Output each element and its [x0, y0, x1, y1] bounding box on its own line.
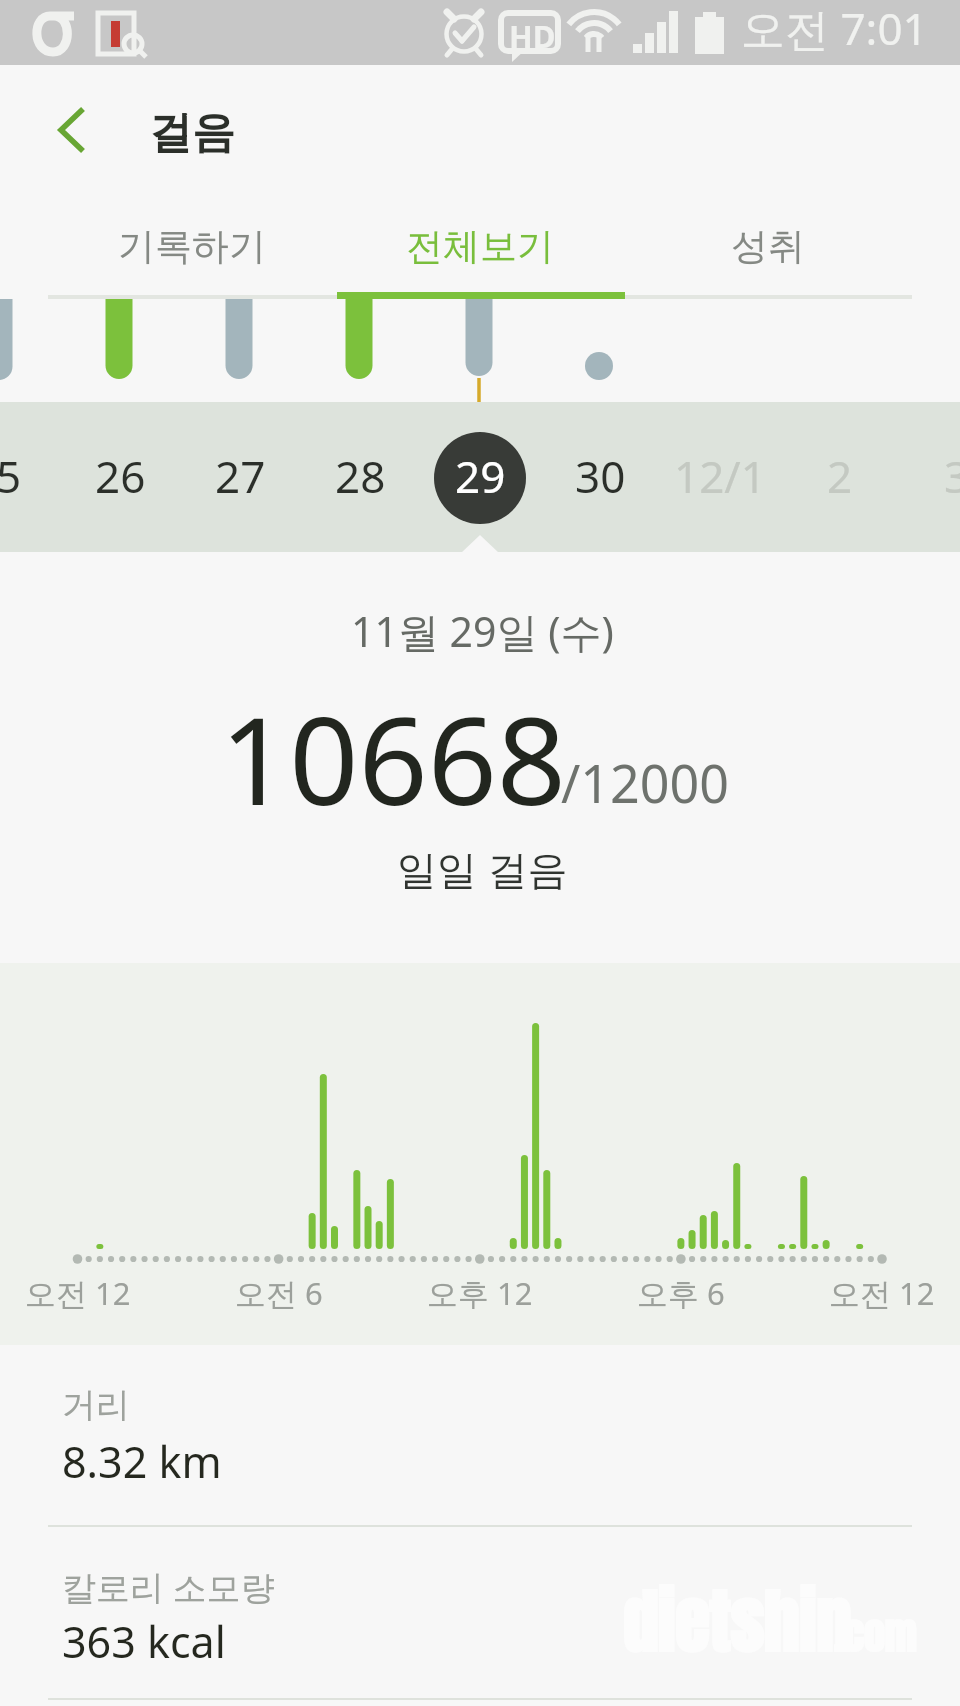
staticText: 오후 12 — [427, 1272, 533, 1314]
button[interactable]: 12/1 — [665, 402, 775, 552]
button[interactable]: 기록하기 — [48, 188, 336, 298]
staticText: 29 — [455, 446, 506, 506]
staticText: 오전 7:01 — [741, 0, 928, 58]
button[interactable]: 28 — [305, 402, 415, 552]
staticText: 오전 12 — [829, 1272, 935, 1314]
button[interactable]: 전체보기 — [336, 188, 624, 298]
staticText: 8.32 km — [62, 1432, 222, 1491]
staticText: 30 — [575, 446, 626, 506]
staticText: 오후 6 — [637, 1272, 725, 1314]
button[interactable]: 29 — [425, 402, 535, 552]
staticText: HD — [509, 15, 556, 57]
staticText: 10668 — [220, 676, 567, 841]
button[interactable]: 2 — [785, 402, 895, 552]
staticText: 전체보기 — [406, 223, 554, 270]
staticText: 27 — [215, 446, 266, 506]
button[interactable]: 27 — [185, 402, 295, 552]
staticText: /12000 — [561, 747, 730, 818]
staticText: 363 kcal — [62, 1612, 226, 1671]
staticText: 걸음 — [149, 106, 235, 160]
button[interactable]: 30 — [545, 402, 655, 552]
staticText: 성취 — [731, 223, 805, 270]
staticText: 26 — [95, 446, 146, 506]
button[interactable]: 5 — [0, 402, 64, 552]
staticText: 칼로리 소모량 — [62, 1564, 275, 1610]
button[interactable]: 26 — [65, 402, 175, 552]
button[interactable]: Back — [36, 95, 108, 167]
staticText: 기록하기 — [118, 223, 266, 270]
staticText: 12/1 — [674, 446, 766, 506]
button[interactable]: 성취 — [624, 188, 912, 298]
staticText: 28 — [335, 446, 386, 506]
button[interactable]: 3 — [902, 402, 960, 552]
staticText: 5 — [0, 446, 22, 506]
button[interactable]: 거리 — [0, 1345, 960, 1525]
staticText: 오전 12 — [25, 1272, 131, 1314]
staticText: 오전 6 — [235, 1272, 323, 1314]
staticText: 일일 걸음 — [397, 841, 568, 896]
staticText: 3 — [944, 446, 960, 506]
staticText: 거리 — [62, 1384, 130, 1427]
button[interactable]: 칼로리 소모량 — [0, 1525, 960, 1705]
staticText: 11월 29일 (수) — [351, 603, 614, 659]
staticText: 2 — [827, 446, 853, 506]
